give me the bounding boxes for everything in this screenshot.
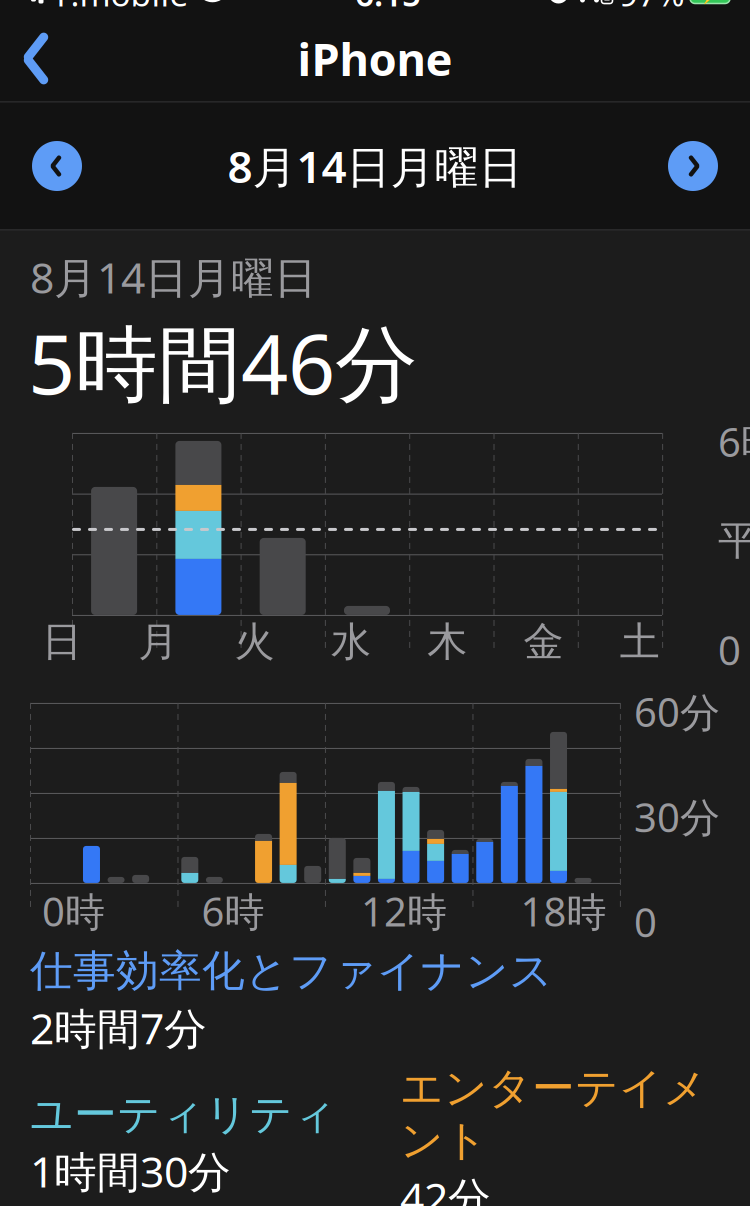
staticText: 12時	[361, 884, 447, 937]
staticText: ユーティリティ	[30, 1088, 337, 1141]
staticText: 日	[42, 617, 82, 666]
staticText: Y!mobile	[51, 0, 188, 16]
staticText: 火	[235, 617, 275, 666]
staticText: 仕事効率化とファイナンス	[30, 945, 553, 997]
staticText: 水	[331, 617, 371, 666]
staticText: 60分	[634, 685, 720, 738]
staticText: 金	[523, 617, 563, 666]
staticText: 土	[620, 617, 660, 666]
staticText: 0	[634, 895, 657, 948]
staticText: 97%	[619, 0, 685, 16]
staticText: 0	[718, 623, 741, 676]
staticText: 6時間	[718, 415, 750, 468]
button[interactable]: 戻る	[0, 22, 72, 94]
staticText: 0時	[42, 884, 105, 937]
staticText: 5時間46分	[28, 307, 418, 417]
staticText: iPhone	[297, 28, 452, 89]
staticText: 8月14日月曜日	[30, 248, 317, 305]
staticText: エンターテイメント	[400, 1062, 707, 1167]
staticText: 18時	[520, 884, 606, 937]
button[interactable]: ユーティリティ	[30, 1088, 400, 1199]
staticText: 平均	[718, 516, 750, 565]
button[interactable]: エンターテイメント	[400, 1062, 730, 1206]
staticText: 木	[427, 617, 467, 666]
button[interactable]: 前の日	[22, 131, 92, 201]
staticText: 6時	[201, 884, 264, 937]
staticText: 30分	[634, 790, 720, 843]
staticText: 月	[138, 617, 178, 666]
button[interactable]: 仕事効率化とファイナンス	[30, 945, 720, 1056]
staticText: 1時間30分	[30, 1143, 231, 1199]
staticText: 2時間7分	[30, 999, 207, 1056]
staticText: 6:15	[355, 0, 421, 16]
button[interactable]: 次の日	[658, 131, 728, 201]
staticText: ⚡	[698, 0, 721, 4]
staticText: 42分	[400, 1169, 491, 1206]
staticText: 8月14日月曜日	[227, 137, 522, 195]
